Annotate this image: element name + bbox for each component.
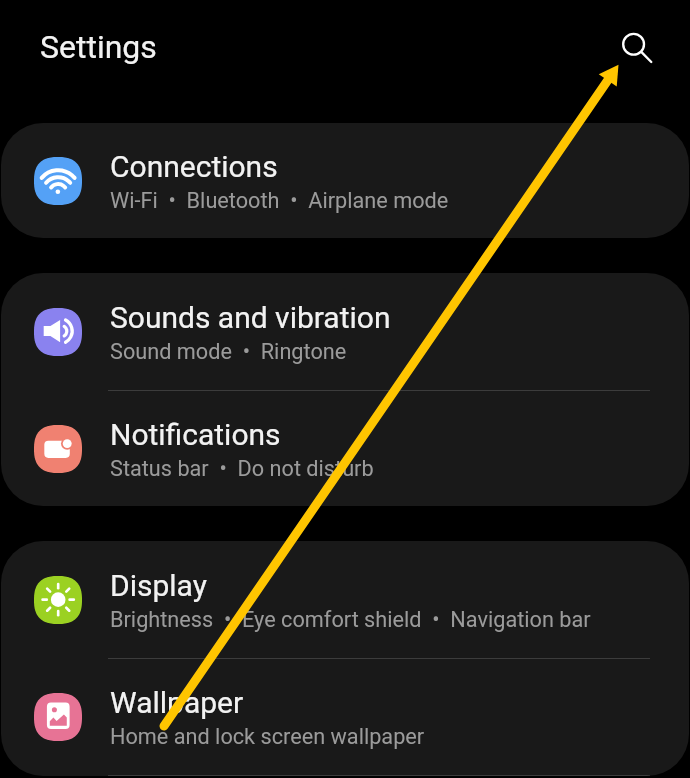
button[interactable]: Search — [609, 20, 658, 69]
staticText: Wi-Fi • Bluetooth • Airplane mode — [110, 188, 449, 213]
button[interactable]: Connections — [1, 123, 689, 238]
staticText: Display — [110, 568, 207, 603]
staticText: Brightness • Eye comfort shield • Naviga… — [110, 607, 591, 632]
staticText: Home and lock screen wallpaper — [110, 724, 425, 749]
staticText: Notifications — [110, 417, 281, 452]
button[interactable]: Notifications — [1, 391, 689, 506]
staticText: Settings — [40, 28, 157, 66]
button[interactable]: Sounds and vibration — [1, 273, 689, 391]
staticText: Wallpaper — [110, 685, 244, 720]
button[interactable]: Display — [1, 541, 689, 659]
staticText: Sounds and vibration — [110, 300, 391, 335]
staticText: Connections — [110, 149, 278, 184]
staticText: Status bar • Do not disturb — [110, 456, 374, 481]
staticText: Sound mode • Ringtone — [110, 339, 347, 364]
button[interactable]: Wallpaper — [1, 659, 689, 776]
